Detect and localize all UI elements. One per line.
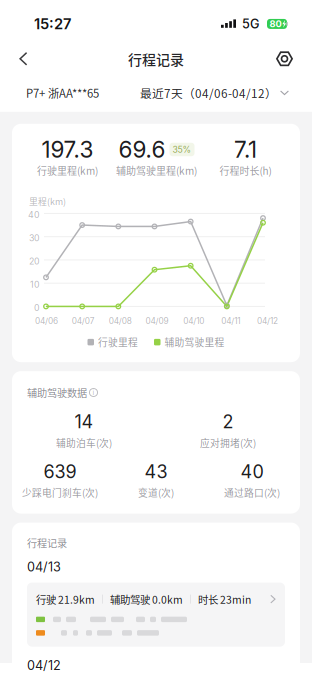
staticText: 10 [30,279,40,290]
staticText: 少踩电门刹车(次) [22,485,98,500]
button[interactable]: Settings [269,45,300,72]
staticText: 5G [242,16,259,31]
staticText: i [92,388,94,397]
staticText: 行驶里程 [98,335,138,349]
staticText: 行程记录 [128,49,184,69]
staticText: 辅助驾驶 0.0km [110,592,183,607]
staticText: 639 [43,461,76,482]
staticText: 20 [29,256,40,266]
staticText: 应对拥堵(次) [200,436,256,450]
staticText: 04/12 [257,316,278,326]
staticText: 7.1 [234,136,257,163]
staticText: 43 [144,461,167,482]
staticText: 辅助驾驶数据 [27,385,87,400]
staticText: 80 [269,18,281,30]
button[interactable]: Back [9,46,38,72]
staticText: 04/07 [72,316,95,326]
staticText: 2 [222,411,233,433]
staticText: 行驶 21.9km [36,592,95,607]
staticText: 69.6 [118,136,165,163]
staticText: 里程(km) [29,195,66,207]
staticText: 04/08 [109,316,132,326]
staticText: 04/12 [27,658,61,673]
staticText: 14 [74,411,93,433]
staticText: 197.3 [41,136,93,163]
staticText: 通过路口(次) [224,485,280,500]
button[interactable]: P7+ 浙AA***65 [26,80,99,106]
staticText: 15:27 [34,15,71,33]
staticText: 辅助驾驶里程 [164,335,224,349]
staticText: 04/06 [35,316,58,326]
staticText: 04/09 [145,316,168,326]
staticText: 辅助驾驶里程(km) [116,163,197,178]
button[interactable]: 最近7天（04/06-04/12） [140,79,289,106]
staticText: 行程记录 [27,536,67,550]
staticText: 04/13 [27,559,61,575]
staticText: 最近7天（04/06-04/12） [140,84,277,101]
staticText: 04/10 [183,316,204,326]
staticText: 变道(次) [138,485,174,500]
staticText: 35% [172,144,191,155]
staticText: 时长 23min [198,592,251,607]
staticText: 04/11 [221,316,240,326]
staticText: 行驶里程(km) [37,163,98,178]
staticText: 30 [29,233,40,243]
staticText: P7+ 浙AA***65 [26,85,99,101]
staticText: 0 [34,302,40,313]
staticText: 行程时长(h) [219,163,271,178]
staticText: 辅助泊车(次) [56,436,112,450]
staticText: 40 [240,461,263,482]
staticText: 40 [28,209,40,220]
button[interactable]: 行驶 21.9km [27,583,285,647]
